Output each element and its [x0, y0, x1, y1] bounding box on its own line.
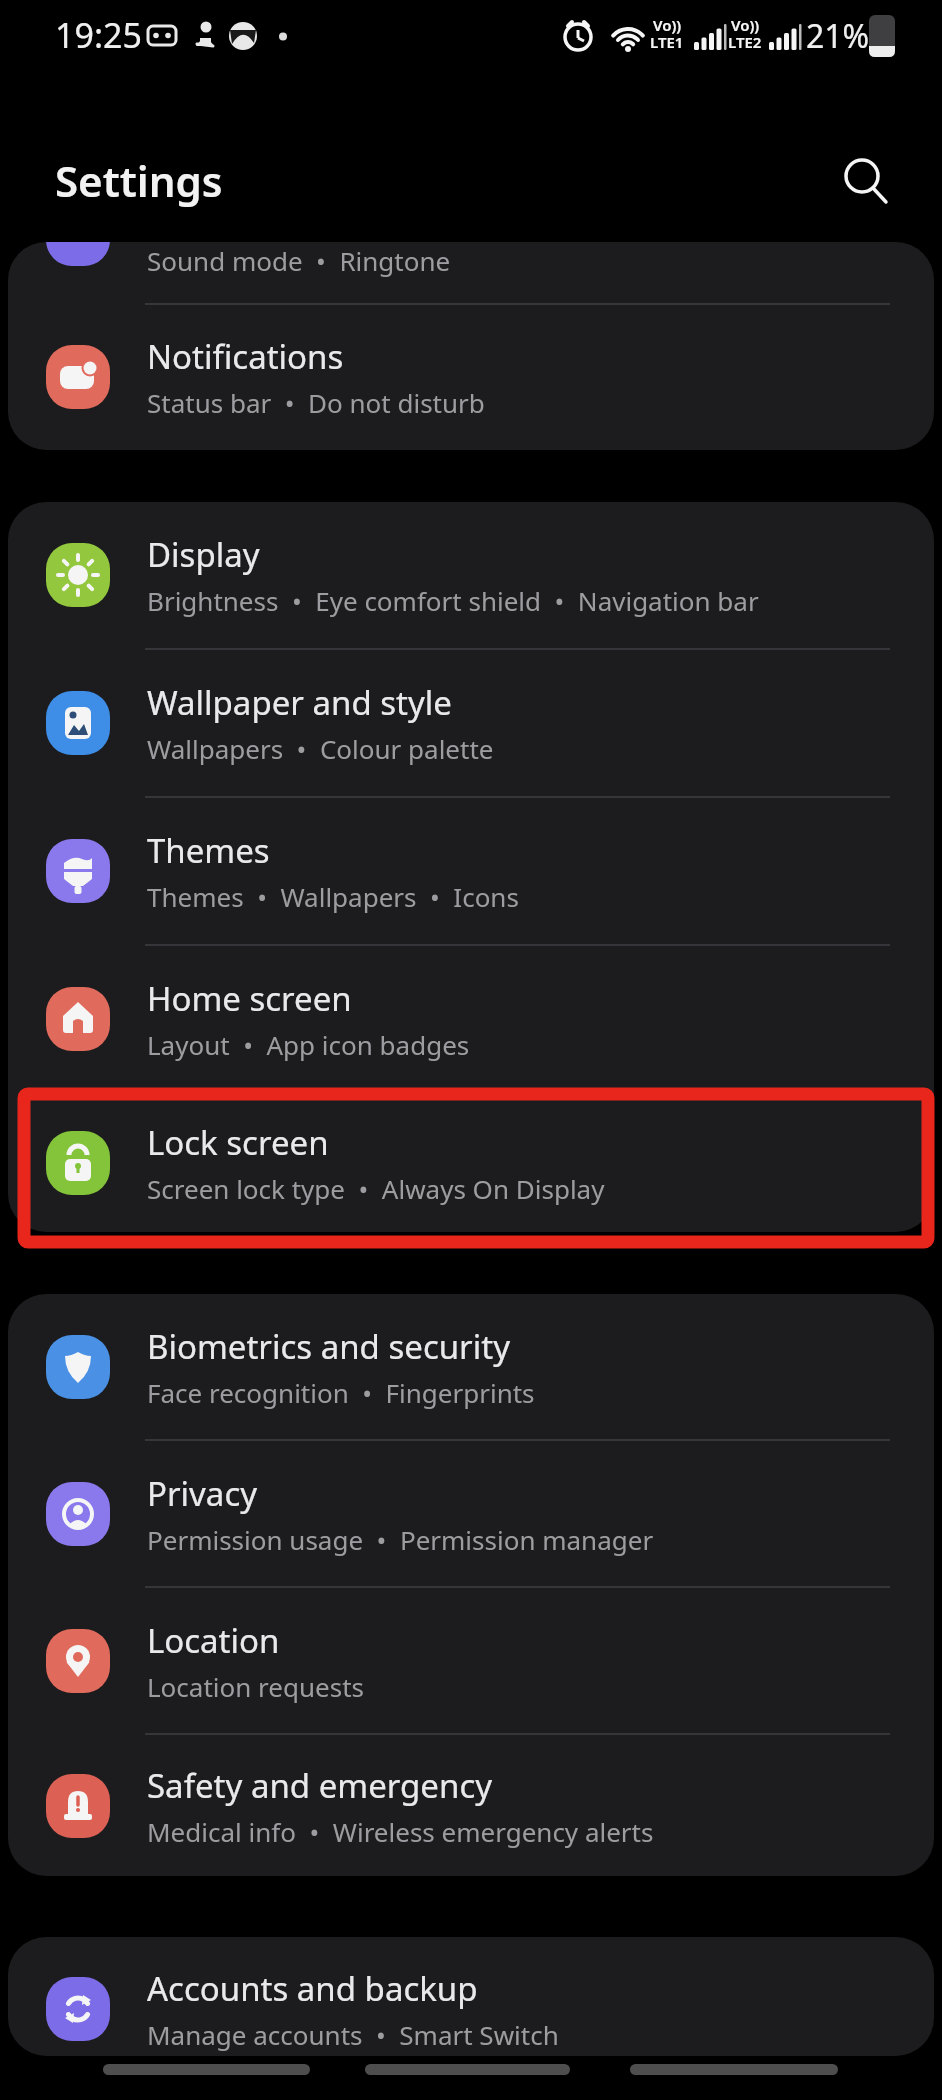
staticText: Themes: [147, 828, 270, 873]
staticText: LTE1: [650, 32, 684, 52]
button[interactable]: Lock screen: [8, 1090, 934, 1232]
staticText: Home screen: [147, 976, 352, 1021]
staticText: Wallpaper and style: [147, 680, 452, 725]
staticText: Layout • App icon badges: [147, 1027, 470, 1062]
button[interactable]: Sound mode • Ringtone: [8, 242, 934, 303]
staticText: Screen lock type • Always On Display: [147, 1171, 605, 1206]
button[interactable]: Safety and emergency: [8, 1733, 934, 1876]
button[interactable]: Notifications: [8, 304, 934, 450]
staticText: Lock screen: [147, 1120, 329, 1165]
staticText: Accounts and backup: [147, 1966, 478, 2011]
button[interactable]: Wallpaper and style: [8, 650, 934, 796]
button[interactable]: Accounts and backup: [8, 1937, 934, 2056]
staticText: 19:25: [55, 12, 142, 58]
staticText: Vo)): [653, 15, 682, 35]
staticText: Manage accounts • Smart Switch: [147, 2017, 559, 2052]
button[interactable]: Themes: [8, 798, 934, 944]
staticText: Location requests: [147, 1669, 364, 1704]
staticText: Safety and emergency: [147, 1763, 493, 1808]
button[interactable]: Display: [8, 502, 934, 648]
staticText: Brightness • Eye comfort shield • Naviga…: [147, 583, 759, 618]
staticText: Permission usage • Permission manager: [147, 1522, 654, 1557]
staticText: Privacy: [147, 1471, 258, 1516]
staticText: Biometrics and security: [147, 1324, 510, 1369]
button[interactable]: Home screen: [8, 946, 934, 1092]
button[interactable]: [830, 145, 900, 215]
staticText: Location: [147, 1618, 280, 1663]
staticText: Sound mode • Ringtone: [147, 243, 451, 278]
button[interactable]: Privacy: [8, 1441, 934, 1586]
staticText: Vo)): [731, 15, 760, 35]
staticText: Wallpapers • Colour palette: [147, 731, 494, 766]
staticText: Settings: [55, 152, 223, 209]
staticText: 21%: [806, 14, 870, 58]
button[interactable]: Location: [8, 1588, 934, 1733]
staticText: LTE2: [728, 32, 762, 52]
staticText: Face recognition • Fingerprints: [147, 1375, 535, 1410]
staticText: Themes • Wallpapers • Icons: [147, 879, 519, 914]
staticText: Status bar • Do not disturb: [147, 385, 485, 420]
staticText: Notifications: [147, 334, 344, 379]
staticText: Display: [147, 532, 260, 577]
button[interactable]: Biometrics and security: [8, 1294, 934, 1439]
staticText: Medical info • Wireless emergency alerts: [147, 1814, 654, 1849]
